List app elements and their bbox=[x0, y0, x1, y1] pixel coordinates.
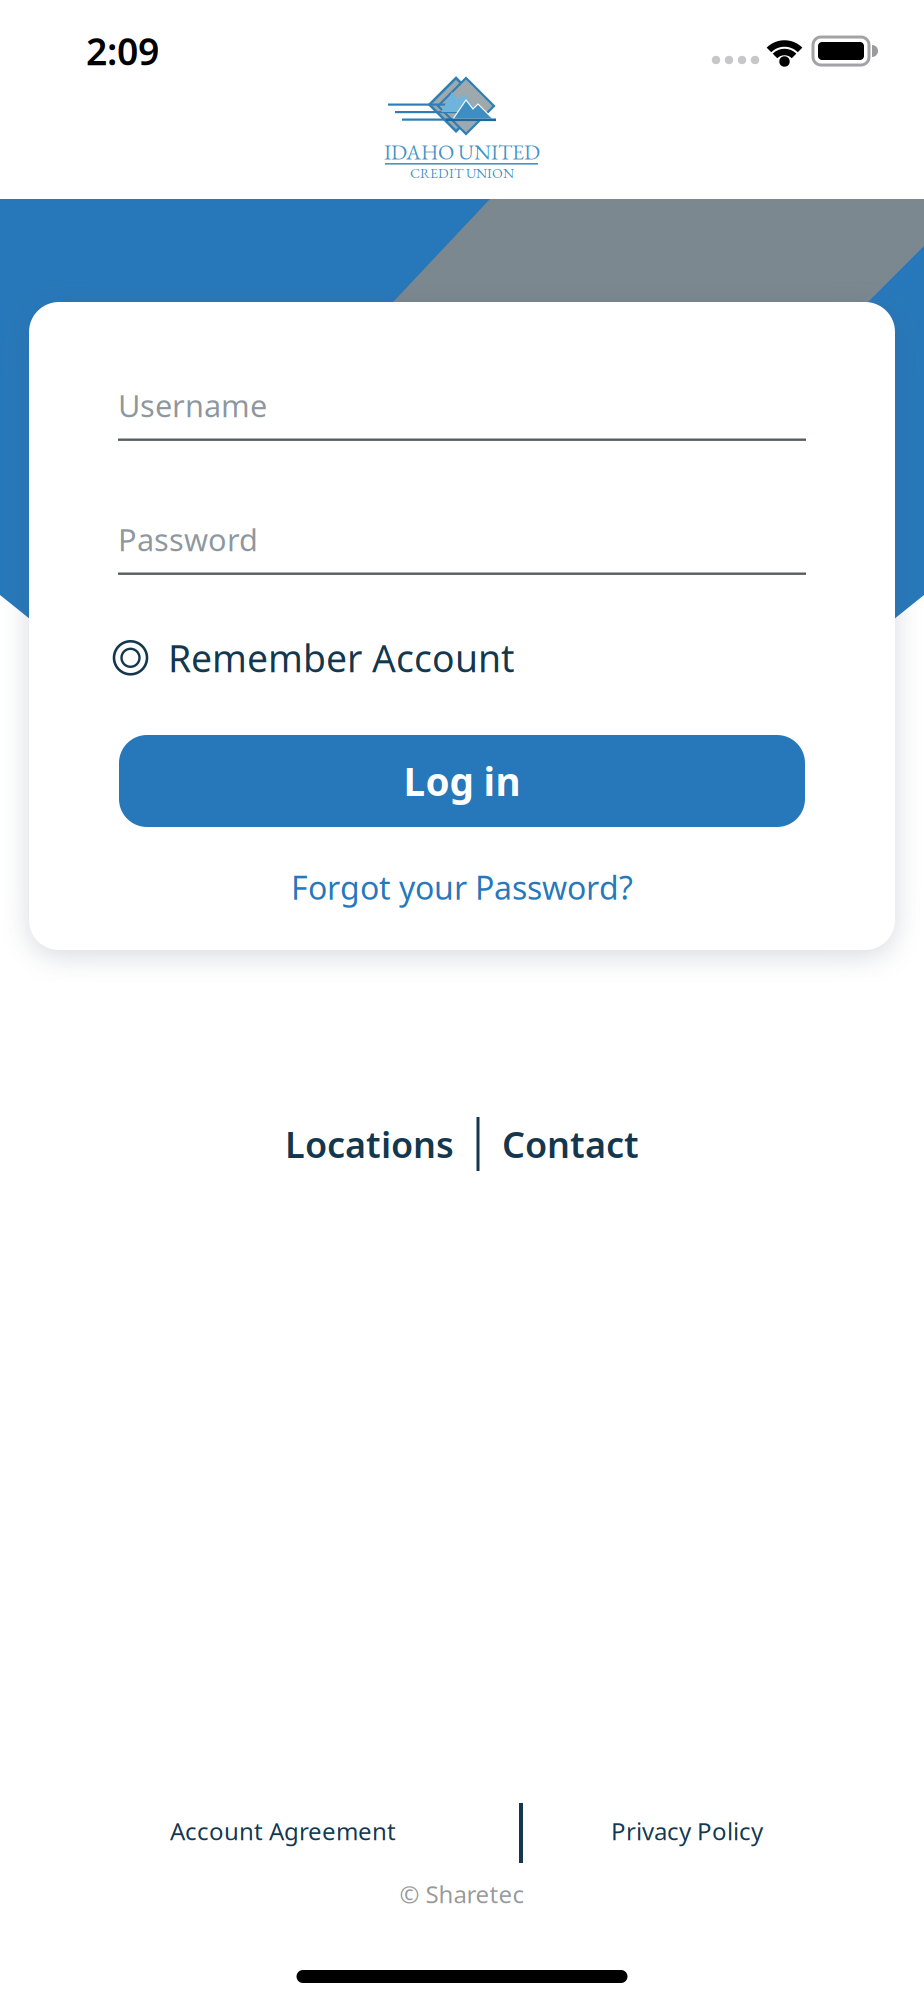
staticText: Username bbox=[118, 385, 267, 426]
button[interactable]: Username bbox=[118, 385, 806, 441]
staticText: IDAHO UNITED bbox=[384, 138, 540, 166]
button[interactable]: Log in bbox=[119, 735, 805, 827]
button[interactable]: Password bbox=[118, 519, 806, 575]
staticText: Account Agreement bbox=[170, 1815, 396, 1847]
button[interactable]: Remember Account bbox=[114, 633, 514, 683]
staticText: Privacy Policy bbox=[611, 1815, 763, 1847]
staticText: Password bbox=[118, 519, 258, 560]
staticText: Contact bbox=[502, 1120, 639, 1168]
staticText: © Sharetec bbox=[399, 1878, 524, 1910]
button[interactable]: Locations bbox=[285, 1120, 454, 1168]
staticText: 2:09 bbox=[86, 26, 159, 76]
button[interactable]: Forgot your Password? bbox=[291, 866, 633, 908]
button[interactable]: Account Agreement bbox=[170, 1815, 396, 1847]
button[interactable]: Privacy Policy bbox=[611, 1815, 763, 1847]
staticText: Forgot your Password? bbox=[291, 866, 633, 908]
staticText: Log in bbox=[403, 755, 520, 807]
staticText: CREDIT UNION bbox=[410, 164, 514, 182]
staticText: Locations bbox=[285, 1120, 454, 1168]
staticText: Remember Account bbox=[168, 633, 514, 683]
button[interactable]: Contact bbox=[502, 1120, 639, 1168]
